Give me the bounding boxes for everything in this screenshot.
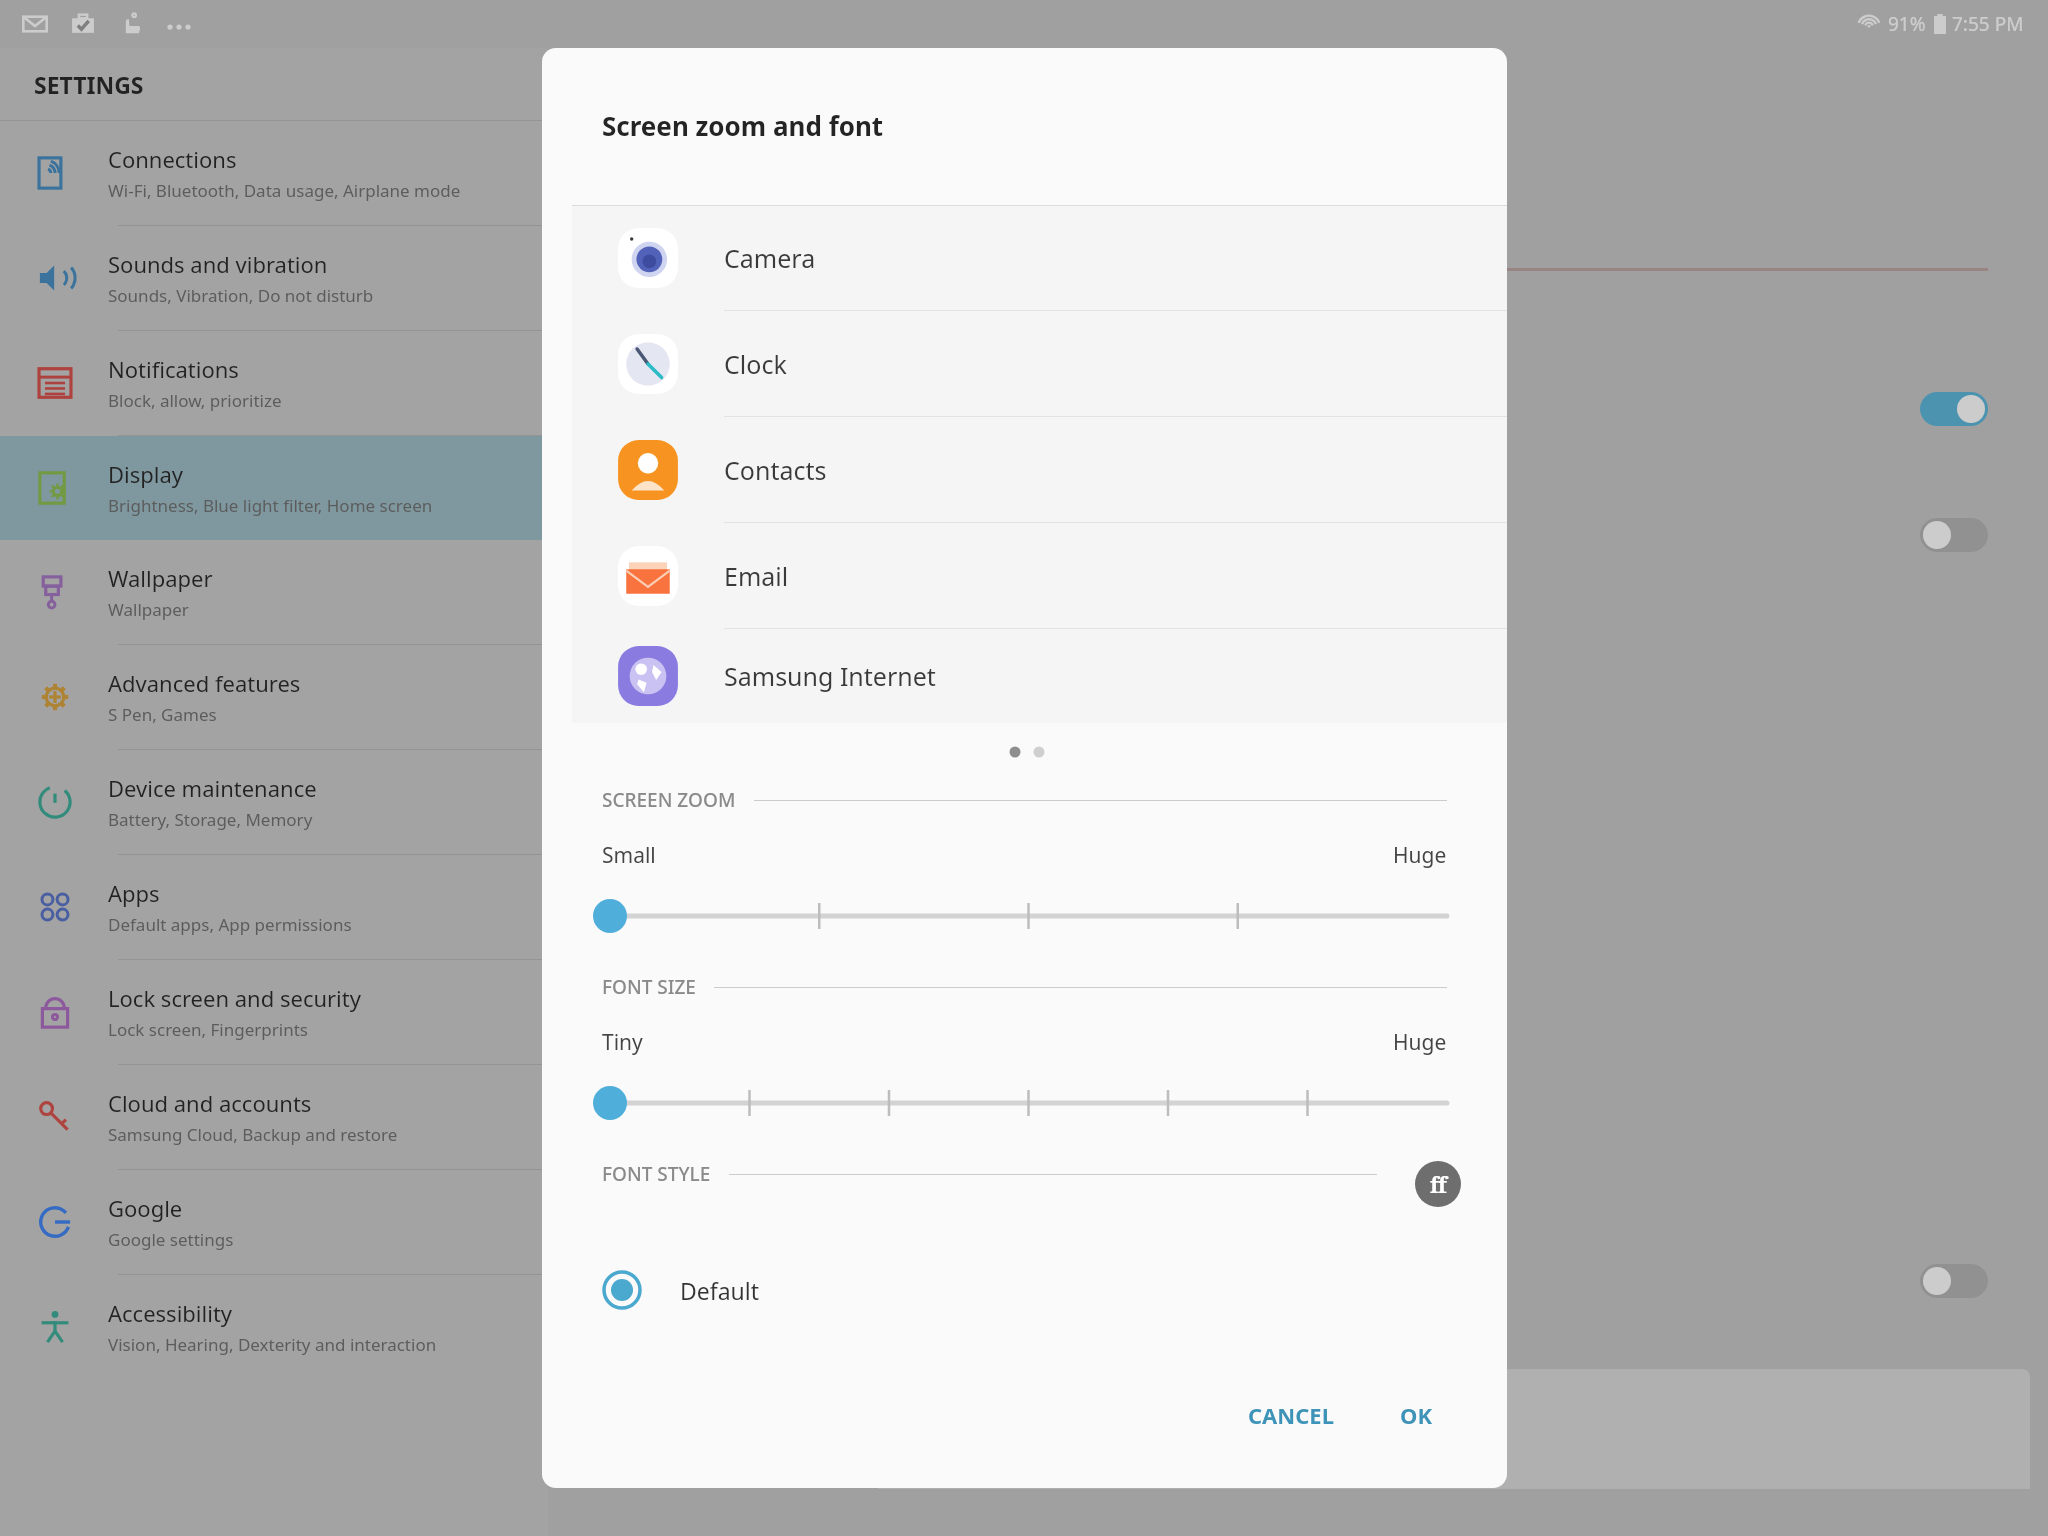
button[interactable]: CANCEL xyxy=(1226,1386,1356,1444)
button[interactable]: Connections xyxy=(0,121,548,225)
staticText: Google xyxy=(108,1193,183,1223)
button[interactable]: Sounds and vibration xyxy=(0,226,548,330)
button[interactable]: Download fonts xyxy=(1415,1161,1461,1207)
staticText: Accessibility xyxy=(108,1298,233,1328)
button[interactable]: Slider xyxy=(542,888,1507,944)
staticText: CANCEL xyxy=(1248,1400,1334,1430)
staticText: Screen zoom and font xyxy=(602,108,884,143)
staticText: Display xyxy=(108,459,184,489)
staticText: Sounds, Vibration, Do not disturb xyxy=(108,284,374,307)
staticText: SCREEN ZOOM xyxy=(602,787,736,813)
button[interactable]: Lock screen and security xyxy=(0,960,548,1064)
staticText: Contacts xyxy=(724,453,827,487)
staticText: FONT STYLE xyxy=(602,1161,711,1187)
button[interactable]: Google xyxy=(0,1170,548,1274)
staticText: SETTINGS xyxy=(34,69,144,100)
staticText: Default xyxy=(680,1275,760,1306)
button[interactable]: Toggle off xyxy=(1920,1264,1988,1298)
staticText: Connections xyxy=(108,144,237,174)
staticText: Sounds and vibration xyxy=(108,249,328,279)
staticText: OK xyxy=(1400,1400,1433,1430)
staticText: Advanced features xyxy=(108,668,301,698)
staticText: Notifications xyxy=(108,354,239,384)
button[interactable]: Device maintenance xyxy=(0,750,548,854)
staticText: Small xyxy=(602,841,656,870)
button[interactable]: ile your phone is charging. xyxy=(548,1253,2048,1309)
staticText: Wallpaper xyxy=(108,563,213,593)
button[interactable]: Default xyxy=(542,1255,1507,1325)
staticText: Clock xyxy=(724,347,787,381)
staticText: y the screen. xyxy=(878,522,991,548)
staticText: Battery, Storage, Memory xyxy=(108,808,313,831)
staticText: ff xyxy=(1430,1169,1447,1199)
staticText: 91% xyxy=(1888,11,1926,37)
staticText: 7:55 PM xyxy=(1952,11,2024,37)
staticText: Lock screen and security xyxy=(108,983,361,1013)
staticText: Cloud and accounts xyxy=(108,1088,312,1118)
staticText: Huge xyxy=(1393,841,1447,870)
staticText: Brightness, Blue light filter, Home scre… xyxy=(108,494,433,517)
staticText: Wallpaper xyxy=(108,598,189,621)
staticText: Default apps, App permissions xyxy=(108,913,352,936)
button[interactable]: OK xyxy=(1378,1386,1455,1444)
button[interactable]: Notifications xyxy=(0,331,548,435)
staticText: Wi-Fi, Bluetooth, Data usage, Airplane m… xyxy=(108,179,461,202)
button[interactable]: y the screen. xyxy=(548,507,2048,563)
button[interactable]: Toggle off xyxy=(1920,518,1988,552)
button[interactable]: Samsung Internet xyxy=(572,629,1507,723)
button[interactable]: Cloud and accounts xyxy=(0,1065,548,1169)
staticText: Huge xyxy=(1393,1028,1447,1057)
button[interactable]: Contacts xyxy=(572,417,1507,523)
staticText: Lock screen, Fingerprints xyxy=(108,1018,308,1041)
staticText: Google settings xyxy=(108,1228,234,1251)
button[interactable]: Accessibility xyxy=(0,1275,548,1379)
button[interactable]: Toggle on xyxy=(1920,392,1988,426)
staticText: Samsung Internet xyxy=(724,659,936,693)
button[interactable]: Advanced features xyxy=(0,645,548,749)
button[interactable]: Apps xyxy=(0,855,548,959)
staticText: Block, allow, prioritize xyxy=(108,389,282,412)
staticText: Apps xyxy=(108,878,160,908)
staticText: Samsung Cloud, Backup and restore xyxy=(108,1123,398,1146)
staticText: FONT SIZE xyxy=(602,974,696,1000)
staticText: g conditions. xyxy=(878,396,993,422)
staticText: Camera xyxy=(724,241,816,275)
staticText: S Pen, Games xyxy=(108,703,217,726)
button[interactable]: Wallpaper xyxy=(0,540,548,644)
staticText: Email xyxy=(724,559,789,593)
staticText: Vision, Hearing, Dexterity and interacti… xyxy=(108,1333,437,1356)
button[interactable]: g conditions. xyxy=(548,381,2048,437)
button[interactable]: Slider xyxy=(542,1075,1507,1131)
button[interactable]: Email xyxy=(572,523,1507,629)
button[interactable]: Clock xyxy=(572,311,1507,417)
button[interactable]: Camera xyxy=(572,205,1507,311)
staticText: Device maintenance xyxy=(108,773,317,803)
button[interactable]: Display xyxy=(0,436,548,540)
staticText: Tiny xyxy=(602,1028,643,1057)
